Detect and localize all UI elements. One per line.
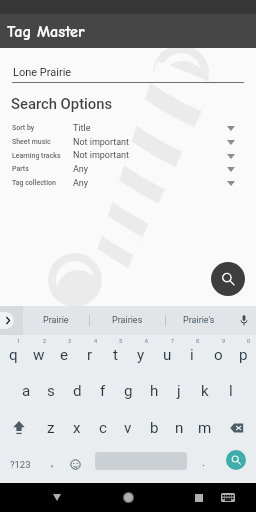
staticText: u (163, 346, 172, 364)
staticText: 2 (43, 338, 47, 344)
button[interactable]: o (205, 335, 231, 372)
button[interactable]: n (166, 409, 192, 446)
staticText: Tag collection (12, 179, 56, 187)
button[interactable]: Learning tracks (0, 149, 256, 163)
button[interactable]: Back (42, 483, 72, 512)
button[interactable]: r (77, 335, 103, 372)
staticText: b (150, 419, 159, 437)
staticText: 8 (196, 338, 200, 344)
staticText: 5 (119, 338, 123, 344)
staticText: 4 (94, 338, 98, 344)
staticText: Search Options (11, 95, 113, 112)
button[interactable]: f (90, 372, 116, 409)
staticText: . (202, 456, 205, 469)
staticText: e (60, 346, 69, 364)
button[interactable]: a (13, 372, 39, 409)
staticText: f (100, 382, 106, 400)
staticText: Prairie (43, 315, 69, 326)
staticText: , (51, 456, 54, 469)
staticText: d (73, 382, 82, 400)
staticText: s (47, 382, 55, 400)
button[interactable]: k (192, 372, 218, 409)
button[interactable]: Recent apps (184, 483, 214, 512)
staticText: i (190, 346, 194, 364)
button[interactable]: Tag collection (0, 176, 256, 190)
staticText: Prairies (112, 315, 143, 326)
button[interactable]: g (115, 372, 141, 409)
button[interactable]: v (115, 409, 141, 446)
button[interactable]: Voice input (233, 306, 254, 335)
staticText: v (124, 419, 132, 437)
button[interactable]: h (141, 372, 167, 409)
button[interactable]: Search (211, 262, 245, 296)
staticText: y (137, 346, 145, 364)
staticText: Lone Prairie (13, 66, 72, 79)
button[interactable]: ?123 (0, 446, 41, 483)
button[interactable]: . (192, 446, 215, 483)
button[interactable]: Home (113, 483, 143, 512)
staticText: n (175, 419, 184, 437)
staticText: 0 (247, 338, 251, 344)
staticText: Sort by (12, 124, 35, 132)
staticText: 3 (68, 338, 72, 344)
staticText: Any (73, 178, 89, 189)
button[interactable]: s (38, 372, 64, 409)
button[interactable]: z (38, 409, 64, 446)
staticText: 1 (17, 338, 21, 344)
staticText: Any (73, 164, 89, 175)
button[interactable]: Shift (0, 409, 38, 446)
button[interactable]: More suggestions (0, 306, 23, 335)
button[interactable]: y (128, 335, 154, 372)
staticText: Sheet music (12, 138, 51, 146)
button[interactable]: Switch keyboard (213, 483, 243, 512)
staticText: p (239, 346, 248, 364)
button[interactable]: q (0, 335, 26, 372)
staticText: q (9, 346, 18, 364)
button[interactable]: Prairies (99, 306, 155, 335)
button[interactable]: i (179, 335, 205, 372)
staticText: r (87, 346, 93, 364)
staticText: w (33, 346, 45, 364)
button[interactable]: Prairie (28, 306, 84, 335)
staticText: Not important (73, 150, 130, 161)
button[interactable]: l (218, 372, 244, 409)
button[interactable]: d (64, 372, 90, 409)
staticText: c (99, 419, 107, 437)
staticText: l (229, 382, 233, 400)
staticText: o (214, 346, 223, 364)
staticText: Title (73, 123, 91, 134)
button[interactable]: Backspace (218, 409, 256, 446)
button[interactable]: w (26, 335, 52, 372)
button[interactable]: j (166, 372, 192, 409)
button[interactable]: , (41, 446, 63, 483)
button[interactable]: Prairie's (171, 306, 227, 335)
staticText: k (201, 382, 209, 400)
staticText: x (73, 419, 81, 437)
button[interactable]: Search (226, 450, 246, 470)
staticText: 6 (145, 338, 149, 344)
staticText: 9 (222, 338, 226, 344)
staticText: Prairie's (183, 315, 215, 326)
staticText: Parts (12, 165, 29, 173)
button[interactable]: x (64, 409, 90, 446)
button[interactable]: Tag Master (0, 14, 256, 48)
staticText: Learning tracks (12, 152, 61, 160)
staticText: t (113, 346, 118, 364)
button[interactable]: Sort by (0, 121, 256, 135)
button[interactable]: c (90, 409, 116, 446)
button[interactable]: Parts (0, 162, 256, 176)
staticText: Not important (73, 137, 130, 148)
button[interactable]: b (141, 409, 167, 446)
button[interactable]: u (154, 335, 180, 372)
staticText: Tag Master (7, 22, 85, 41)
staticText: m (198, 419, 212, 437)
button[interactable]: m (192, 409, 218, 446)
button[interactable]: p (230, 335, 256, 372)
button[interactable]: Sheet music (0, 135, 256, 149)
button[interactable]: e (51, 335, 77, 372)
staticText: j (177, 382, 181, 400)
button[interactable]: Emoji (63, 446, 88, 483)
button[interactable]: t (102, 335, 128, 372)
